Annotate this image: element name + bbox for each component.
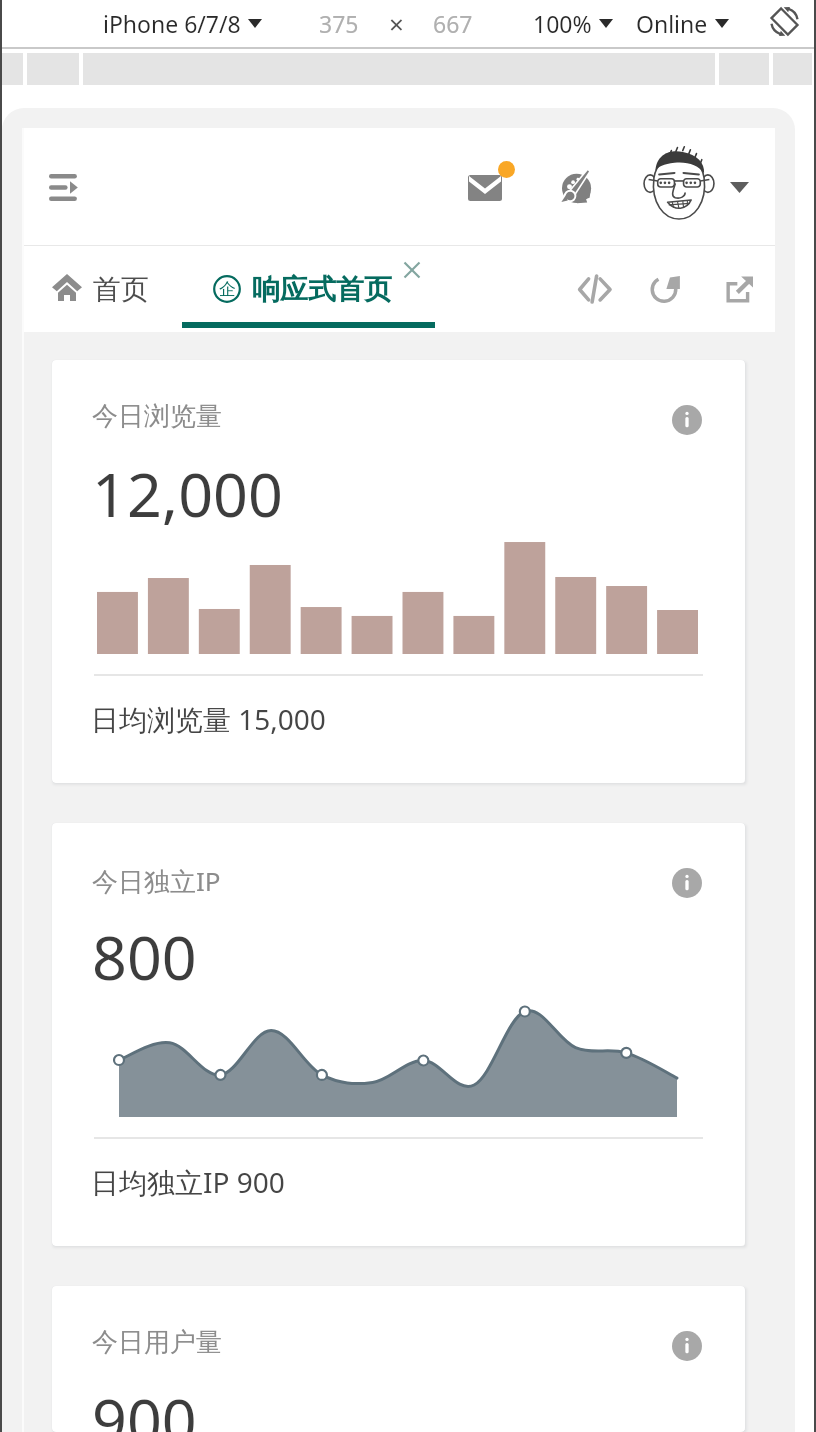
staticText: 今日用户量 (92, 1326, 222, 1359)
button[interactable]: Refresh (639, 261, 695, 317)
button[interactable]: 首页 (24, 246, 182, 332)
button[interactable]: Open in new window (711, 261, 767, 317)
button[interactable]: Rotate device (762, 0, 806, 43)
staticText: 800 (92, 915, 197, 998)
staticText: 日均独立IP 900 (91, 1163, 285, 1201)
staticText: 375 (319, 8, 359, 39)
staticText: × (389, 6, 404, 41)
button[interactable]: 今日用户量 (52, 1286, 745, 1432)
button[interactable]: Info (671, 404, 703, 436)
staticText: iPhone 6/7/8 (103, 8, 241, 39)
button[interactable]: Theme (551, 162, 603, 214)
button[interactable]: View source (567, 261, 623, 317)
button[interactable]: Online (632, 4, 733, 43)
button[interactable]: Messages (463, 156, 519, 212)
staticText: 日均浏览量 15,000 (91, 700, 326, 738)
staticText: 首页 (93, 272, 149, 307)
button[interactable]: Info (671, 867, 703, 899)
staticText: 667 (433, 8, 473, 39)
button[interactable]: iPhone 6/7/8 (99, 4, 266, 43)
button[interactable]: 今日浏览量 (52, 360, 745, 783)
button[interactable]: Toggle menu (38, 161, 90, 213)
staticText: 企 (219, 279, 236, 300)
staticText: 100% (533, 8, 592, 39)
staticText: 今日浏览量 (92, 400, 222, 433)
button[interactable]: Close tab (397, 255, 427, 285)
button[interactable]: 100% (529, 4, 617, 43)
staticText: Online (636, 8, 708, 39)
staticText: 900 (92, 1378, 197, 1432)
staticText: 12,000 (92, 452, 283, 535)
staticText: 今日独立IP (92, 863, 221, 899)
button[interactable]: 今日独立IP (52, 823, 745, 1246)
button[interactable] (641, 149, 751, 225)
staticText: 响应式首页 (252, 272, 392, 307)
button[interactable]: Info (671, 1330, 703, 1362)
button[interactable]: 企 (182, 246, 435, 332)
